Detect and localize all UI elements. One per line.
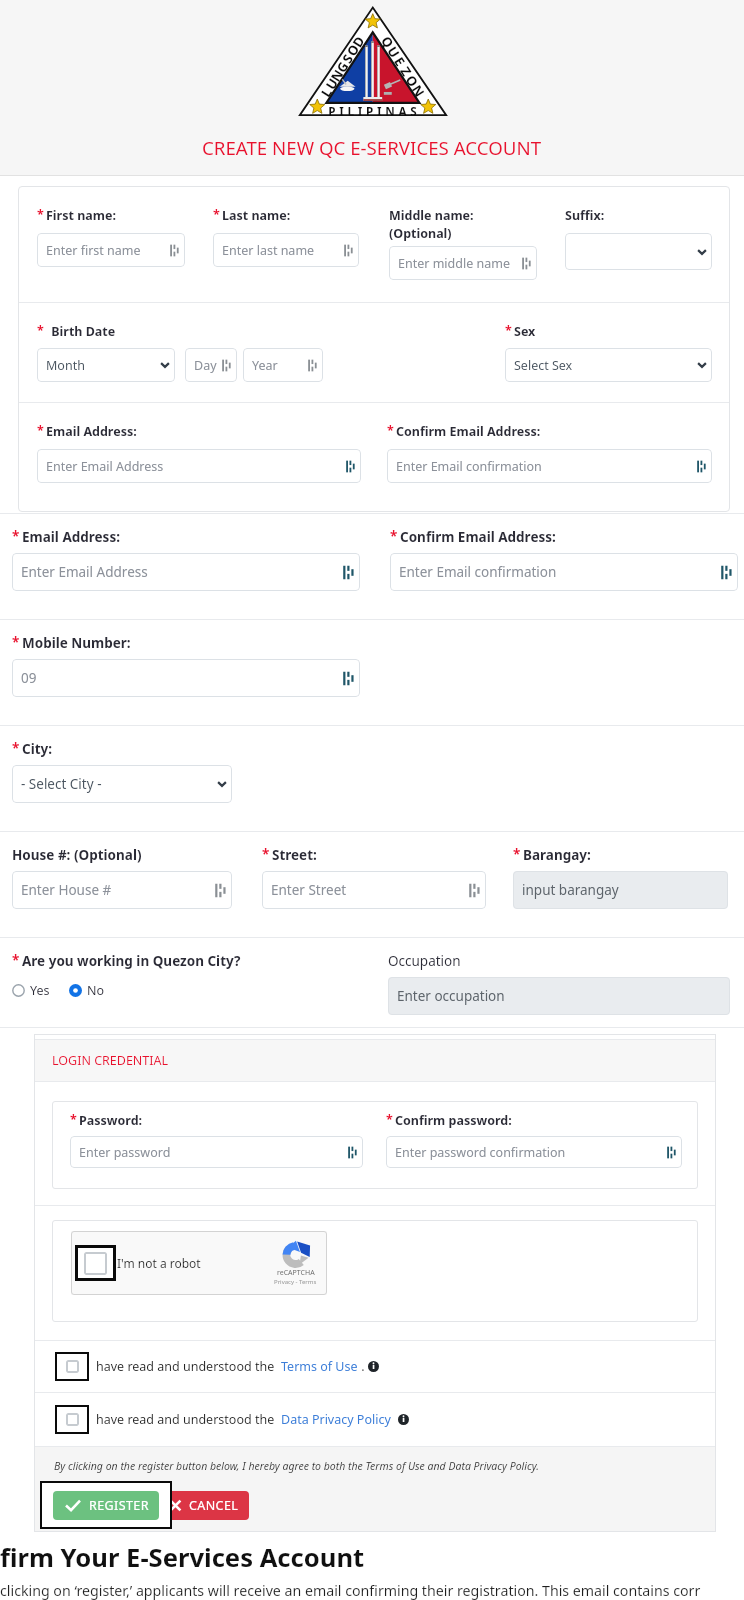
staticText: House #: (Optional) (12, 846, 142, 864)
staticText: Enter Email confirmation (399, 563, 721, 581)
button[interactable]: Day (185, 348, 237, 382)
staticText: Enter Street (271, 881, 469, 899)
button[interactable]: Enter Street (262, 871, 486, 909)
staticText: Suffix: (565, 207, 605, 224)
button[interactable]: No (69, 982, 107, 999)
staticText: Occupation (388, 952, 461, 970)
staticText: I'm not a robot (117, 1255, 201, 1271)
staticText: . (358, 1358, 368, 1375)
staticText: Day (194, 357, 222, 374)
staticText: - Select City - (21, 775, 217, 793)
button[interactable]: Enter Email Address (12, 553, 360, 591)
staticText: Email Address: (22, 528, 120, 546)
staticText: reCAPTCHA (277, 1268, 315, 1278)
staticText: Confirm password: (395, 1112, 512, 1129)
staticText: Enter middle name (398, 255, 522, 272)
staticText: * (386, 1111, 393, 1128)
staticText: Confirm Email Address: (400, 528, 556, 546)
staticText: Enter password (79, 1144, 348, 1161)
button[interactable]: Checkbox (71, 1231, 327, 1295)
staticText: CANCEL (189, 1497, 239, 1514)
button[interactable]: Month (37, 348, 175, 382)
button[interactable]: Select Sex (505, 348, 712, 382)
button[interactable]: Checkbox (55, 1352, 89, 1381)
staticText: Confirm Email Address: (396, 423, 541, 440)
staticText: REGISTER (89, 1497, 149, 1514)
button[interactable]: Year (243, 348, 323, 382)
staticText: Enter Email confirmation (396, 458, 697, 475)
staticText: * (513, 845, 521, 863)
staticText: * (12, 633, 20, 651)
button[interactable]: Checkbox (55, 1405, 89, 1434)
staticText: * (387, 422, 394, 439)
button[interactable]: CANCEL (159, 1491, 249, 1520)
staticText: Mobile Number: (22, 634, 131, 652)
staticText: Select Sex (514, 357, 697, 374)
staticText: No (87, 982, 105, 999)
staticText: * (70, 1111, 77, 1128)
staticText: Privacy - Terms (274, 1278, 317, 1286)
staticText: Enter occupation (397, 987, 724, 1005)
button[interactable]: Enter Email Address (37, 449, 361, 483)
staticText: Last name: (222, 207, 291, 224)
staticText: Enter Email Address (21, 563, 343, 581)
staticText: Are you working in Quezon City? (22, 952, 241, 970)
staticText: clicking on ‘register,’ applicants will … (0, 1581, 701, 1600)
button[interactable] (565, 233, 712, 270)
button[interactable]: Enter password (70, 1136, 363, 1168)
staticText: * (505, 322, 512, 339)
staticText: firm Your E-Services Account (0, 1540, 365, 1575)
button[interactable]: Enter House # (12, 871, 232, 909)
staticText: Enter last name (222, 242, 344, 259)
staticText: LOGIN CREDENTIAL (52, 1052, 169, 1069)
staticText: * (390, 527, 398, 545)
staticText: have read and understood the (96, 1411, 281, 1428)
staticText: Month (46, 357, 160, 374)
staticText: Barangay: (523, 846, 591, 864)
button[interactable]: Enter last name (213, 233, 359, 267)
staticText: First name: (46, 207, 116, 224)
button[interactable]: Enter middle name (389, 246, 537, 280)
staticText: * (12, 527, 20, 545)
staticText: Birth Date (48, 323, 116, 340)
staticText: Password: (79, 1112, 143, 1129)
staticText: * (37, 206, 44, 223)
staticText: By clicking on the register button below… (54, 1459, 539, 1473)
staticText: Middle name: (Optional) (389, 207, 474, 241)
staticText: * (12, 739, 20, 757)
button[interactable]: Checkbox (75, 1245, 116, 1281)
button[interactable]: Enter Email confirmation (390, 553, 738, 591)
staticText: * (37, 422, 44, 439)
staticText: Email Address: (46, 423, 137, 440)
staticText: Enter password confirmation (395, 1144, 667, 1161)
button[interactable]: Enter password confirmation (386, 1136, 682, 1168)
button[interactable]: input barangay (513, 871, 728, 909)
button[interactable]: - Select City - (12, 765, 232, 803)
staticText: Enter House # (21, 881, 215, 899)
staticText: * (37, 322, 44, 339)
button[interactable]: Data Privacy Policy (281, 1411, 391, 1428)
button[interactable]: Yes (12, 982, 52, 999)
staticText: 09 (21, 669, 343, 687)
button[interactable]: Enter first name (37, 233, 185, 267)
staticText: Yes (30, 982, 50, 999)
staticText: CREATE NEW QC E-SERVICES ACCOUNT (202, 135, 542, 160)
staticText: input barangay (522, 881, 722, 899)
staticText: * (12, 951, 20, 969)
staticText: City: (22, 740, 53, 758)
button[interactable]: REGISTER (53, 1491, 159, 1520)
button[interactable]: 09 (12, 659, 360, 697)
button[interactable]: Enter Email confirmation (387, 449, 712, 483)
staticText: Sex (514, 323, 536, 340)
staticText: * (262, 845, 270, 863)
button[interactable]: Terms of Use (281, 1358, 358, 1375)
staticText: Enter first name (46, 242, 170, 259)
staticText: have read and understood the (96, 1358, 281, 1375)
staticText: * (213, 206, 220, 223)
staticText: Enter Email Address (46, 458, 346, 475)
staticText: Year (252, 357, 308, 374)
staticText: Street: (272, 846, 317, 864)
button[interactable]: Enter occupation (388, 977, 730, 1015)
